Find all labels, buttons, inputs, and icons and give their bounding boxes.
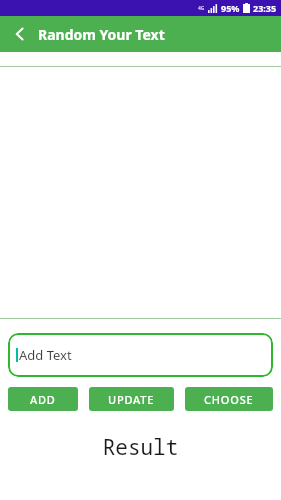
staticText: Random Your Text	[38, 25, 165, 44]
staticText: Result	[0, 433, 281, 462]
staticText: Add Text	[19, 346, 72, 364]
staticText: ADD	[30, 392, 56, 407]
button[interactable]: Back	[6, 20, 34, 48]
staticText: 95%	[221, 2, 240, 14]
staticText: 4G	[198, 5, 205, 12]
staticText: 23:35	[253, 2, 277, 14]
staticText: UPDATE	[108, 392, 155, 407]
button[interactable]: ADD	[8, 387, 78, 411]
staticText: CHOOSE	[204, 392, 254, 407]
button[interactable]: UPDATE	[89, 387, 174, 411]
button[interactable]: Add Text	[8, 333, 273, 377]
button[interactable]: CHOOSE	[185, 387, 273, 411]
